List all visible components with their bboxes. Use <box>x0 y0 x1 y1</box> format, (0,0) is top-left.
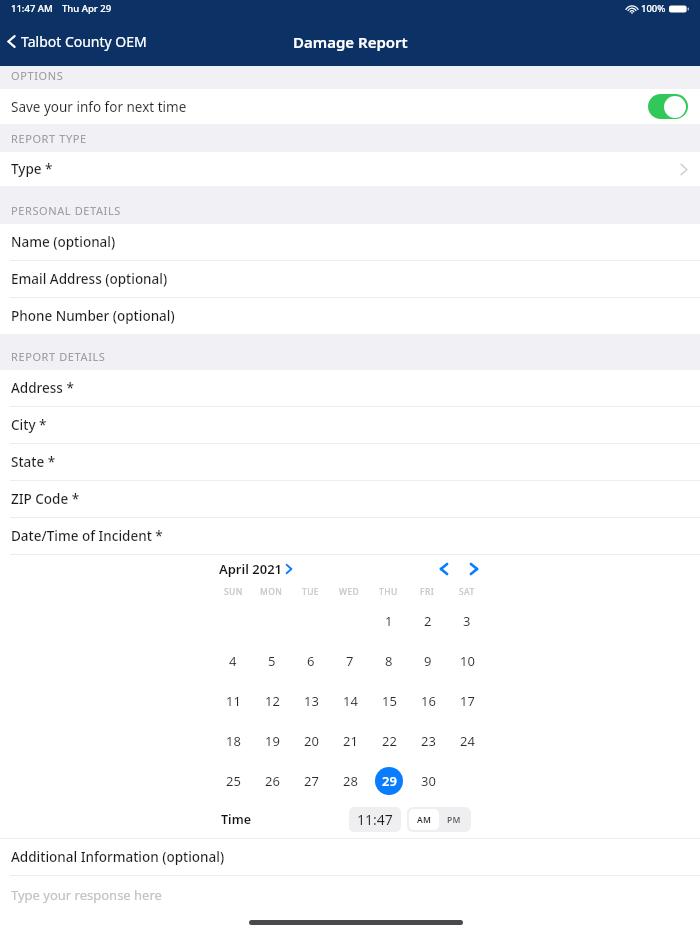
staticText: 12 <box>265 692 280 710</box>
button[interactable]: 21 <box>336 727 364 755</box>
staticText: Additional Information (optional) <box>11 848 225 866</box>
button[interactable]: 27 <box>297 767 325 795</box>
staticText: 3 <box>463 612 471 630</box>
button[interactable]: Email Address (optional) <box>0 261 700 297</box>
button[interactable]: 17 <box>453 687 481 715</box>
staticText: TUE <box>302 586 319 598</box>
staticText: PERSONAL DETAILS <box>11 203 121 218</box>
button[interactable]: 6 <box>297 647 325 675</box>
staticText: 28 <box>343 772 358 790</box>
staticText: Damage Report <box>293 32 408 52</box>
staticText: 26 <box>265 772 280 790</box>
staticText: 21 <box>343 732 358 750</box>
staticText: City * <box>11 416 47 434</box>
button[interactable]: Next month <box>461 556 487 582</box>
button[interactable]: Save your info toggle, on <box>648 94 688 119</box>
staticText: 24 <box>460 732 475 750</box>
button[interactable]: 29 <box>375 767 403 795</box>
staticText: 23 <box>421 732 436 750</box>
button[interactable]: AM <box>409 809 439 830</box>
button[interactable]: 4 <box>219 647 247 675</box>
button[interactable]: April 2021 <box>219 560 293 578</box>
staticText: 4 <box>229 652 237 670</box>
button[interactable]: Additional Information (optional) <box>0 839 700 875</box>
button[interactable]: 16 <box>414 687 442 715</box>
staticText: REPORT TYPE <box>11 131 87 146</box>
button[interactable]: 30 <box>414 767 442 795</box>
button[interactable]: 8 <box>375 647 403 675</box>
button[interactable]: 11 <box>219 687 247 715</box>
staticText: 19 <box>265 732 280 750</box>
staticText: MON <box>260 586 283 598</box>
button[interactable]: Save your info for next time <box>0 89 700 124</box>
staticText: REPORT DETAILS <box>11 349 106 364</box>
staticText: SAT <box>459 586 475 598</box>
button[interactable]: City * <box>0 407 700 443</box>
staticText: FRI <box>420 586 435 598</box>
staticText: OPTIONS <box>11 68 64 83</box>
staticText: 100% <box>641 2 666 15</box>
button[interactable]: Type * <box>0 152 700 186</box>
button[interactable]: PM <box>439 809 469 830</box>
staticText: 22 <box>382 732 397 750</box>
staticText: Name (optional) <box>11 233 116 251</box>
button[interactable]: 9 <box>414 647 442 675</box>
staticText: 18 <box>226 732 241 750</box>
staticText: 29 <box>382 772 397 790</box>
staticText: State * <box>11 453 56 471</box>
button[interactable]: 13 <box>297 687 325 715</box>
staticText: 15 <box>382 692 397 710</box>
staticText: 11:47 <box>357 810 393 829</box>
staticText: Thu Apr 29 <box>62 2 112 15</box>
button[interactable]: Name (optional) <box>0 224 700 260</box>
button[interactable]: 18 <box>219 727 247 755</box>
button[interactable]: 5 <box>258 647 286 675</box>
staticText: Type your response here <box>11 886 162 904</box>
staticText: WED <box>339 586 360 598</box>
button[interactable]: 10 <box>453 647 481 675</box>
staticText: Phone Number (optional) <box>11 307 175 325</box>
button[interactable]: Talbot County OEM <box>0 28 155 55</box>
staticText: 11 <box>226 692 241 710</box>
button[interactable]: Type your response here <box>0 876 700 934</box>
button[interactable]: Address * <box>0 370 700 406</box>
button[interactable]: 26 <box>258 767 286 795</box>
button[interactable]: 28 <box>336 767 364 795</box>
button[interactable]: 23 <box>414 727 442 755</box>
button[interactable]: State * <box>0 444 700 480</box>
staticText: Time <box>221 811 251 828</box>
button[interactable]: 3 <box>453 607 481 635</box>
button[interactable]: 25 <box>219 767 247 795</box>
staticText: 16 <box>421 692 436 710</box>
staticText: Date/Time of Incident * <box>11 527 163 545</box>
button[interactable]: 22 <box>375 727 403 755</box>
button[interactable]: 15 <box>375 687 403 715</box>
button[interactable]: 20 <box>297 727 325 755</box>
button[interactable]: 2 <box>414 607 442 635</box>
staticText: 13 <box>304 692 319 710</box>
staticText: 25 <box>226 772 241 790</box>
staticText: 30 <box>421 772 436 790</box>
button[interactable]: Phone Number (optional) <box>0 298 700 334</box>
staticText: 9 <box>424 652 432 670</box>
button[interactable]: 12 <box>258 687 286 715</box>
staticText: ZIP Code * <box>11 490 80 508</box>
staticText: THU <box>379 586 398 598</box>
staticText: 8 <box>385 652 393 670</box>
staticText: SUN <box>224 586 243 598</box>
button[interactable]: 19 <box>258 727 286 755</box>
button[interactable]: 14 <box>336 687 364 715</box>
staticText: PM <box>447 814 461 826</box>
button[interactable]: 24 <box>453 727 481 755</box>
button[interactable]: 11:47 <box>349 807 401 832</box>
staticText: AM <box>417 814 432 826</box>
staticText: 11:47 AM <box>11 2 53 15</box>
button[interactable]: ZIP Code * <box>0 481 700 517</box>
button[interactable]: Previous month <box>431 556 457 582</box>
staticText: Talbot County OEM <box>21 32 147 51</box>
button[interactable]: 1 <box>375 607 403 635</box>
staticText: 5 <box>268 652 276 670</box>
staticText: April 2021 <box>219 560 282 578</box>
button[interactable]: 7 <box>336 647 364 675</box>
button[interactable]: Date/Time of Incident * <box>0 518 700 554</box>
